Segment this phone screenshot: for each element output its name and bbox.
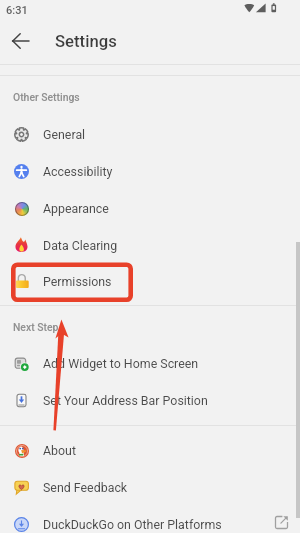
staticText: Appearance — [43, 201, 109, 216]
button[interactable]: Data Clearing — [0, 227, 300, 264]
button[interactable]: Set Your Address Bar Position — [0, 382, 300, 419]
staticText: Other Settings — [13, 91, 80, 103]
staticText: Next Step — [13, 321, 59, 333]
staticText: About — [43, 443, 76, 458]
button[interactable]: Permissions — [0, 263, 300, 300]
staticText: Data Clearing — [43, 238, 118, 253]
button[interactable]: Appearance — [0, 190, 300, 227]
staticText: Permissions — [43, 274, 112, 289]
staticText: Add Widget to Home Screen — [43, 356, 199, 371]
staticText: DuckDuckGo on Other Platforms — [43, 517, 222, 532]
button[interactable]: About — [0, 432, 300, 469]
staticText: Accessibility — [43, 164, 113, 179]
button[interactable]: Back — [4, 24, 38, 58]
staticText: Set Your Address Bar Position — [43, 393, 208, 408]
button[interactable]: DuckDuckGo on Other Platforms — [0, 506, 300, 533]
staticText: Settings — [55, 32, 117, 52]
button[interactable]: Add Widget to Home Screen — [0, 345, 300, 382]
button[interactable]: Send Feedback — [0, 469, 300, 506]
button[interactable]: Accessibility — [0, 153, 300, 190]
staticText: 6:31 — [6, 4, 28, 17]
button[interactable]: General — [0, 116, 300, 153]
staticText: General — [43, 127, 86, 142]
staticText: Send Feedback — [43, 480, 128, 495]
